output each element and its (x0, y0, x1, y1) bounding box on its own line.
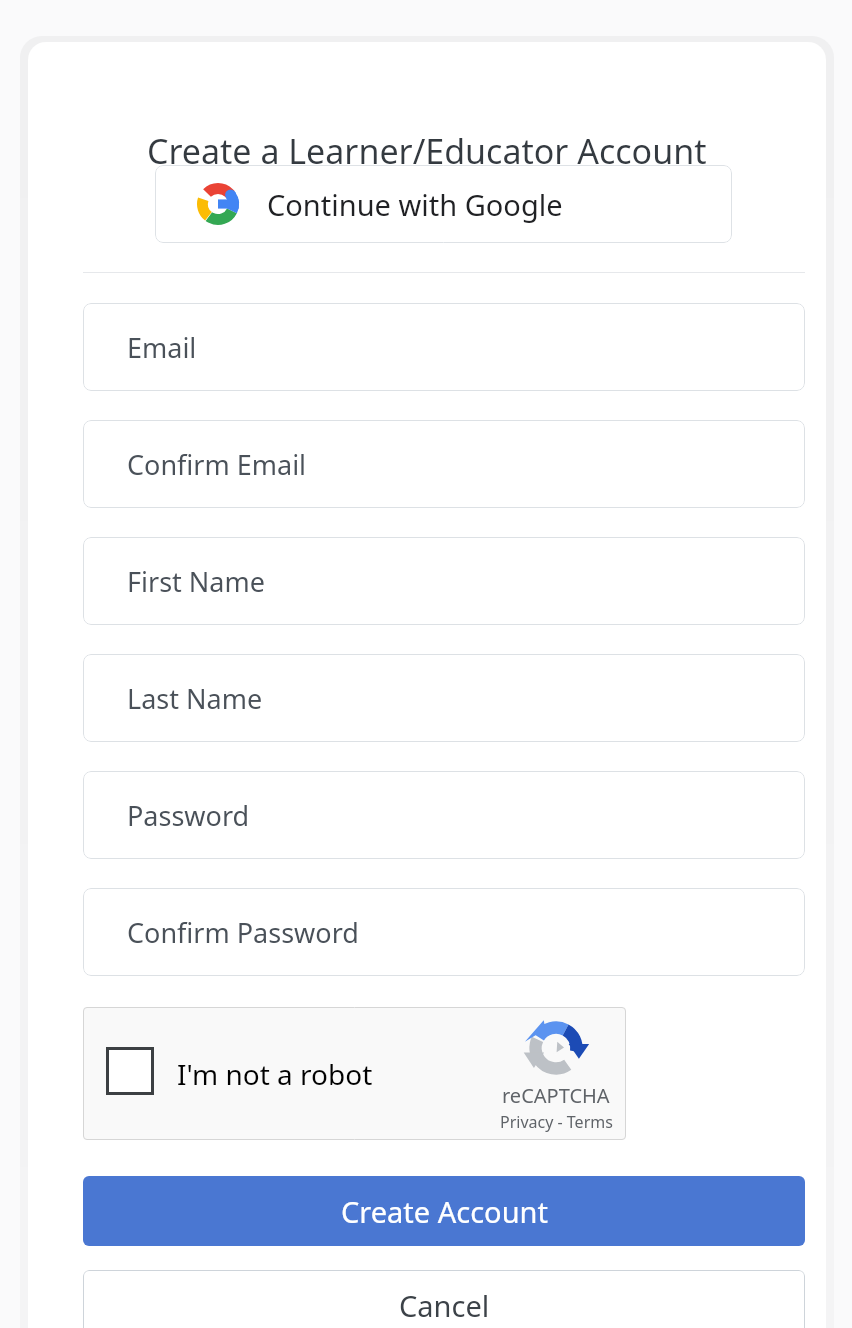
staticText: reCAPTCHA (502, 1082, 610, 1109)
staticText: Create a Learner/Educator Account (147, 128, 707, 174)
button[interactable]: First Name (83, 537, 805, 625)
staticText: Privacy - Terms (500, 1111, 613, 1133)
button[interactable]: Create Account (83, 1176, 805, 1246)
staticText: Confirm Email (127, 446, 307, 483)
button[interactable]: Email (83, 303, 805, 391)
button[interactable]: I'm not a robot checkbox (106, 1047, 154, 1095)
staticText: Password (127, 797, 250, 834)
staticText: First Name (127, 563, 265, 600)
button[interactable]: Last Name (83, 654, 805, 742)
button[interactable]: Confirm Email (83, 420, 805, 508)
staticText: Last Name (127, 680, 263, 717)
button[interactable]: Cancel (83, 1270, 805, 1328)
staticText: Cancel (399, 1286, 490, 1325)
staticText: Continue with Google (267, 185, 563, 224)
staticText: I'm not a robot (177, 1055, 373, 1093)
button[interactable]: Confirm Password (83, 888, 805, 976)
staticText: Create Account (341, 1192, 548, 1231)
staticText: Confirm Password (127, 914, 359, 951)
staticText: Email (127, 329, 197, 366)
button[interactable]: Password (83, 771, 805, 859)
button[interactable]: Continue with Google (155, 165, 732, 243)
